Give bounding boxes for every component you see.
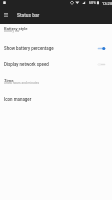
- button[interactable]: Display network speed: [0, 58, 112, 71]
- staticText: Display network speed: [4, 62, 96, 67]
- button[interactable]: Show battery percentage: [0, 42, 112, 55]
- staticText: Show battery percentage: [4, 46, 96, 51]
- staticText: Battery style: [4, 26, 28, 31]
- button[interactable]: Time: [0, 76, 112, 92]
- button[interactable]: Toggle: [96, 43, 107, 54]
- staticText: Show hours and minutes: [4, 81, 40, 85]
- button[interactable]: Battery style: [0, 24, 112, 40]
- staticText: 68%: [89, 1, 96, 5]
- button[interactable]: Navigation menu: [0, 9, 12, 21]
- staticText: Icon manager: [4, 97, 107, 102]
- staticText: 13:28: [102, 1, 112, 6]
- button[interactable]: Icon manager: [0, 93, 112, 106]
- button[interactable]: Toggle: [96, 59, 107, 70]
- staticText: Status bar: [17, 13, 40, 19]
- staticText: Battery bar: [4, 29, 20, 33]
- staticText: Time: [4, 78, 14, 83]
